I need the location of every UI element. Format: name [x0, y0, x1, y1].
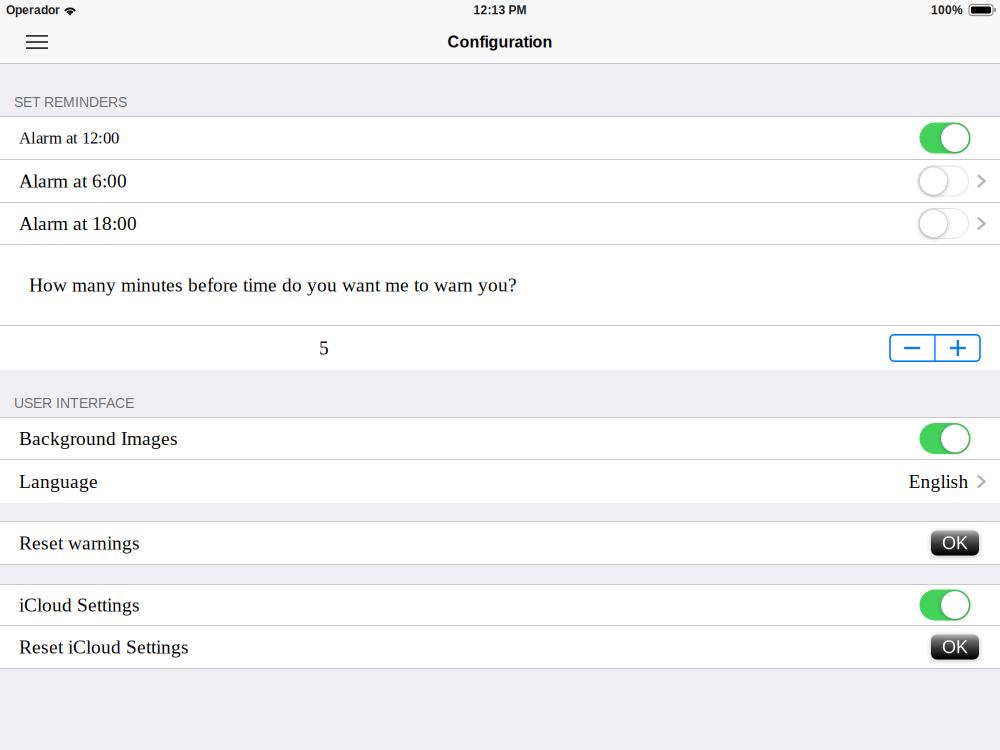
button[interactable]: Language [0, 460, 1000, 503]
button[interactable]: Menu [15, 21, 59, 63]
button[interactable]: Decrease [890, 335, 934, 361]
button[interactable]: Reset warnings [0, 522, 1000, 564]
staticText: OK [942, 533, 968, 553]
staticText: Alarm at 18:00 [19, 213, 137, 234]
staticText: How many minutes before time do you want… [29, 274, 517, 296]
staticText: 5 [319, 337, 329, 359]
staticText: Configuration [447, 33, 552, 51]
staticText: 100% [931, 3, 963, 17]
button[interactable]: Alarm at 18:00 [0, 203, 1000, 244]
staticText: SET REMINDERS [14, 94, 127, 110]
staticText: Reset iCloud Settings [19, 636, 189, 658]
staticText: English [908, 471, 968, 492]
button[interactable]: Background Images [0, 418, 1000, 459]
button[interactable]: Increase [936, 335, 980, 361]
staticText: Alarm at 6:00 [19, 170, 127, 192]
staticText: Reset warnings [19, 532, 140, 554]
button[interactable]: OK [931, 634, 979, 659]
staticText: OK [942, 637, 968, 657]
staticText: iCloud Settings [19, 594, 140, 616]
staticText: 12:13 PM [473, 3, 526, 17]
button[interactable]: Reset iCloud Settings [0, 626, 1000, 668]
button[interactable]: Alarm at 6:00 [0, 160, 1000, 202]
button[interactable]: Alarm at 12:00 [0, 117, 1000, 159]
staticText: Operador [6, 3, 60, 17]
button[interactable]: iCloud Settings [0, 585, 1000, 625]
staticText: Background Images [19, 428, 178, 449]
staticText: Alarm at 12:00 [19, 129, 119, 147]
button[interactable]: How many minutes before time do you want… [0, 245, 1000, 325]
staticText: Language [19, 471, 98, 492]
staticText: USER INTERFACE [14, 395, 134, 411]
button[interactable]: OK [931, 530, 979, 555]
